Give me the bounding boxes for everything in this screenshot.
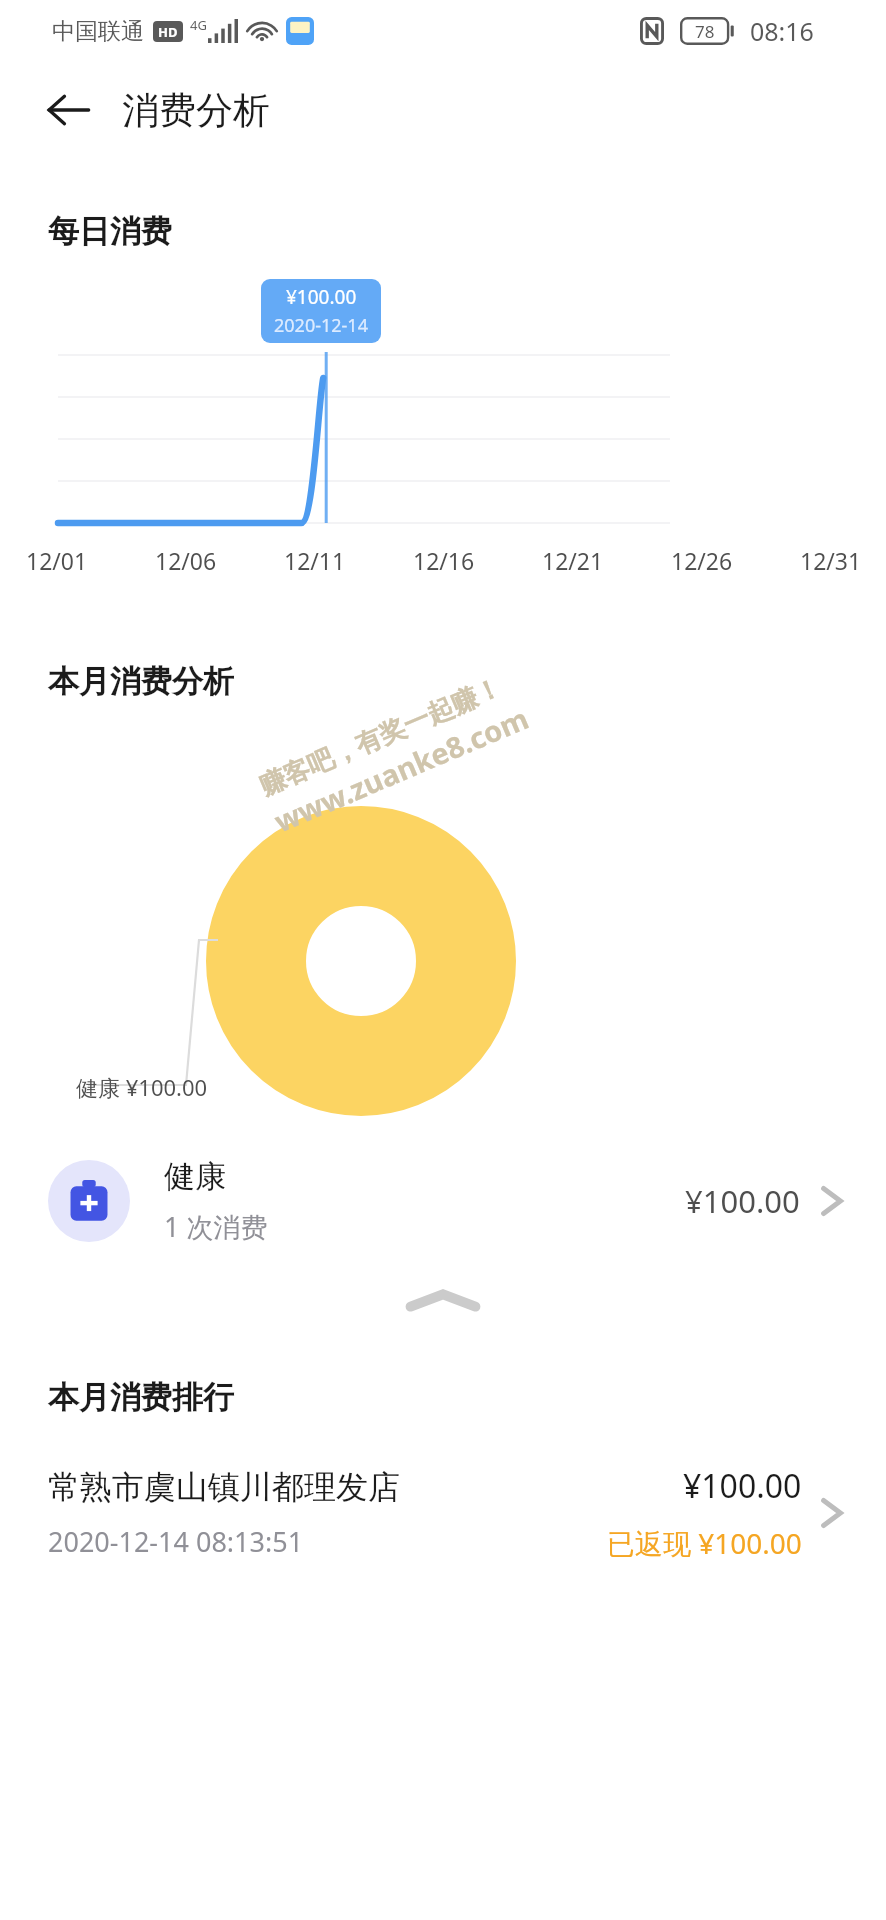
staticText: 消费分析 xyxy=(122,87,270,134)
staticText: www.zuanke8.com xyxy=(268,698,535,840)
staticText: ¥100.00 xyxy=(685,1180,800,1222)
staticText: 12/26 xyxy=(671,545,733,576)
button[interactable]: Collapse xyxy=(0,1265,886,1337)
staticText: 中国联通 xyxy=(52,17,144,46)
button[interactable]: 常熟市虞山镇川都理发店 xyxy=(0,1438,886,1588)
staticText: 2020-12-14 08:13:51 xyxy=(48,1523,304,1560)
staticText: 常熟市虞山镇川都理发店 xyxy=(48,1467,400,1507)
staticText: ¥100.00 xyxy=(286,284,357,310)
staticText: 78 xyxy=(695,20,715,43)
button[interactable]: Back xyxy=(30,72,106,148)
staticText: 12/31 xyxy=(800,545,862,576)
staticText: 每日消费 xyxy=(48,212,172,251)
staticText: 健康 ¥100.00 xyxy=(76,1072,208,1102)
staticText: ¥100.00 xyxy=(683,1464,802,1508)
button[interactable]: ¥100.00 xyxy=(261,279,381,343)
staticText: 1 次消费 xyxy=(164,1208,268,1245)
staticText: 赚客吧，有奖一起赚！ xyxy=(254,671,507,803)
staticText: 已返现 ¥100.00 xyxy=(607,1524,802,1562)
staticText: 12/01 xyxy=(26,545,88,576)
staticText: 12/16 xyxy=(413,545,475,576)
staticText: 本月消费排行 xyxy=(48,1378,234,1417)
staticText: 健康 xyxy=(164,1157,226,1196)
staticText: 08:16 xyxy=(750,14,814,48)
staticText: 12/06 xyxy=(155,545,217,576)
staticText: 12/21 xyxy=(542,545,604,576)
staticText: HD xyxy=(158,23,178,41)
staticText: 2020-12-14 xyxy=(274,313,368,338)
staticText: 12/11 xyxy=(284,545,346,576)
staticText: 本月消费分析 xyxy=(48,662,234,701)
staticText: 4G xyxy=(190,16,207,34)
button[interactable]: 健康 xyxy=(0,1140,886,1262)
